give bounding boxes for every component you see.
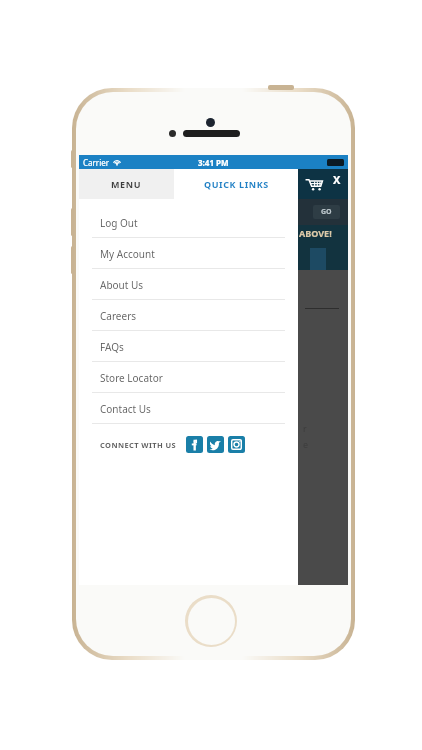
button[interactable]: Store Locator <box>79 362 298 393</box>
button[interactable]: QUICK LINKS <box>174 169 298 199</box>
staticText: X <box>333 172 341 187</box>
staticText: MENU <box>111 178 142 190</box>
staticText: r <box>303 422 307 434</box>
button[interactable]: Close menu <box>302 171 344 197</box>
staticText: FAQs <box>100 340 124 354</box>
staticText: Careers <box>100 309 137 323</box>
button[interactable]: Careers <box>79 300 298 331</box>
staticText: ABOVE! <box>299 227 332 239</box>
staticText: CONNECT WITH US <box>100 440 177 450</box>
staticText: 3:41 PM <box>198 157 229 168</box>
staticText: Carrier <box>83 157 110 168</box>
button[interactable]: Log Out <box>79 207 298 238</box>
button[interactable]: GO <box>313 205 340 219</box>
staticText: Contact Us <box>100 402 151 416</box>
staticText: QUICK LINKS <box>204 178 269 190</box>
button[interactable]: FAQs <box>79 331 298 362</box>
button[interactable]: Facebook <box>186 436 203 453</box>
button[interactable]: My Account <box>79 238 298 269</box>
button[interactable]: About Us <box>79 269 298 300</box>
button[interactable]: Twitter <box>207 436 224 453</box>
button[interactable]: MENU <box>79 169 174 199</box>
staticText: About Us <box>100 278 144 292</box>
button[interactable]: Contact Us <box>79 393 298 424</box>
button[interactable]: Instagram <box>228 436 245 453</box>
staticText: e <box>303 438 309 450</box>
staticText: My Account <box>100 247 155 261</box>
staticText: GO <box>321 207 332 217</box>
staticText: Store Locator <box>100 371 163 385</box>
staticText: Log Out <box>100 216 138 230</box>
